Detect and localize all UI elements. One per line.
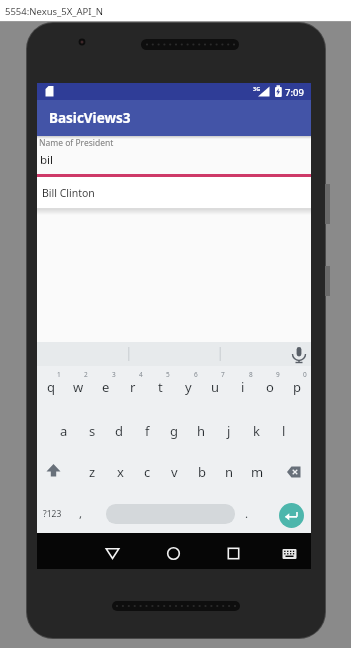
- button[interactable]: [98, 539, 127, 568]
- staticText: v: [171, 463, 178, 481]
- staticText: 7: [221, 370, 225, 379]
- button[interactable]: x: [107, 459, 133, 485]
- staticText: BasicViews3: [49, 109, 131, 127]
- staticText: x: [117, 463, 124, 481]
- staticText: 1: [57, 370, 61, 379]
- staticText: bil: [40, 152, 54, 168]
- button[interactable]: m: [244, 459, 270, 485]
- staticText: 6: [194, 370, 198, 379]
- button[interactable]: r: [120, 374, 146, 400]
- staticText: g: [170, 422, 178, 440]
- button[interactable]: [287, 342, 311, 366]
- staticText: b: [198, 463, 206, 481]
- button[interactable]: b: [189, 459, 215, 485]
- staticText: Name of President: [39, 137, 114, 149]
- staticText: q: [47, 378, 55, 396]
- staticText: p: [293, 378, 301, 396]
- staticText: 3G: [253, 85, 261, 92]
- button[interactable]: y: [175, 374, 201, 400]
- button[interactable]: v: [161, 459, 187, 485]
- button[interactable]: t: [147, 374, 173, 400]
- button[interactable]: [106, 504, 235, 524]
- staticText: k: [253, 422, 260, 440]
- staticText: 5: [166, 370, 170, 379]
- staticText: 2: [84, 370, 88, 379]
- staticText: y: [185, 378, 192, 396]
- button[interactable]: [219, 539, 248, 568]
- staticText: ?123: [43, 508, 62, 520]
- button[interactable]: Bill Clinton: [37, 177, 311, 209]
- button[interactable]: u: [202, 374, 228, 400]
- staticText: u: [211, 378, 220, 396]
- button[interactable]: w: [65, 374, 91, 400]
- staticText: j: [227, 422, 231, 440]
- staticText: 8: [249, 370, 253, 379]
- button[interactable]: f: [134, 418, 160, 444]
- button[interactable]: c: [134, 459, 160, 485]
- staticText: .: [245, 506, 249, 522]
- button[interactable]: [278, 459, 305, 485]
- staticText: r: [130, 378, 136, 396]
- staticText: c: [144, 463, 151, 481]
- button[interactable]: q: [38, 374, 64, 400]
- staticText: Bill Clinton: [42, 186, 95, 200]
- staticText: f: [145, 422, 150, 440]
- button[interactable]: [159, 539, 188, 568]
- button[interactable]: g: [161, 418, 187, 444]
- staticText: s: [89, 422, 96, 440]
- staticText: ,: [79, 506, 83, 522]
- staticText: i: [241, 378, 245, 396]
- staticText: 4: [139, 370, 143, 379]
- button[interactable]: d: [106, 418, 132, 444]
- staticText: z: [89, 463, 96, 481]
- staticText: 5554:Nexus_5X_API_N: [5, 5, 104, 18]
- button[interactable]: ?123: [37, 501, 67, 527]
- staticText: d: [115, 422, 123, 440]
- button[interactable]: [275, 539, 304, 568]
- button[interactable]: j: [216, 418, 242, 444]
- staticText: a: [60, 422, 68, 440]
- button[interactable]: i: [230, 374, 256, 400]
- button[interactable]: s: [79, 418, 105, 444]
- button[interactable]: h: [188, 418, 214, 444]
- staticText: o: [266, 378, 274, 396]
- staticText: 7:09: [285, 86, 304, 99]
- staticText: 3: [112, 370, 116, 379]
- button[interactable]: e: [93, 374, 119, 400]
- button[interactable]: k: [243, 418, 269, 444]
- staticText: 0: [303, 370, 307, 379]
- staticText: t: [158, 378, 163, 396]
- button[interactable]: l: [271, 418, 297, 444]
- staticText: m: [251, 463, 264, 481]
- button[interactable]: o: [257, 374, 283, 400]
- staticText: 9: [276, 370, 280, 379]
- button[interactable]: n: [216, 459, 242, 485]
- staticText: e: [102, 378, 110, 396]
- staticText: n: [225, 463, 234, 481]
- button[interactable]: z: [79, 459, 105, 485]
- button[interactable]: .: [234, 501, 260, 527]
- button[interactable]: a: [51, 418, 77, 444]
- staticText: h: [197, 422, 206, 440]
- staticText: w: [73, 378, 84, 396]
- button[interactable]: p: [284, 374, 310, 400]
- button[interactable]: [40, 459, 67, 485]
- button[interactable]: ,: [68, 501, 94, 527]
- staticText: l: [282, 422, 286, 440]
- button[interactable]: [279, 503, 304, 528]
